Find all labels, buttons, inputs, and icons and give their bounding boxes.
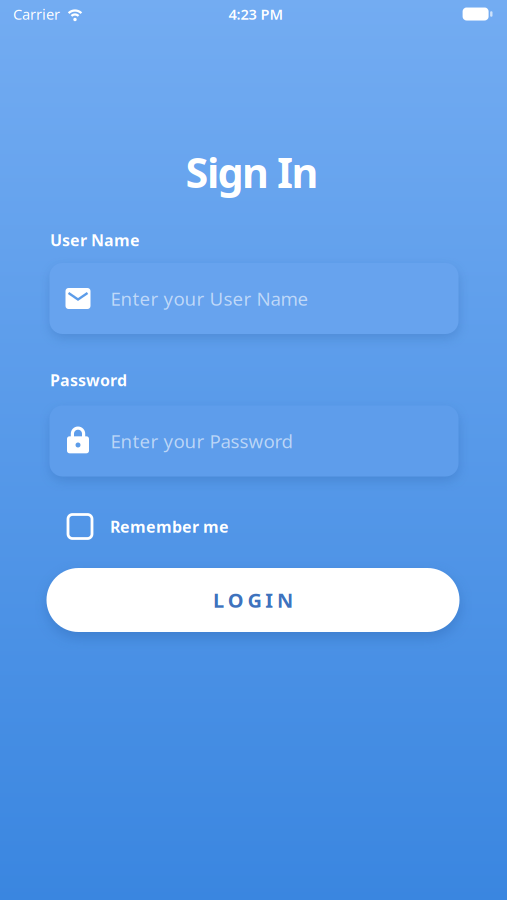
staticText: L xyxy=(213,587,224,613)
button[interactable]: L xyxy=(46,568,459,632)
staticText: G xyxy=(247,587,261,613)
button[interactable]: Remember me xyxy=(68,514,457,538)
staticText: Remember me xyxy=(110,516,229,537)
staticText: Sign In xyxy=(185,145,318,199)
button[interactable]: Enter your Password xyxy=(49,405,458,476)
staticText: Enter your User Name xyxy=(110,286,308,311)
staticText: User Name xyxy=(50,229,140,251)
staticText: Carrier xyxy=(13,4,60,24)
staticText: Password xyxy=(50,369,127,391)
button[interactable]: Enter your User Name xyxy=(49,263,458,334)
staticText: O xyxy=(228,587,244,613)
staticText: N xyxy=(277,587,293,613)
staticText: I xyxy=(265,587,273,613)
staticText: Enter your Password xyxy=(110,429,292,453)
staticText: 4:23 PM xyxy=(228,4,283,24)
